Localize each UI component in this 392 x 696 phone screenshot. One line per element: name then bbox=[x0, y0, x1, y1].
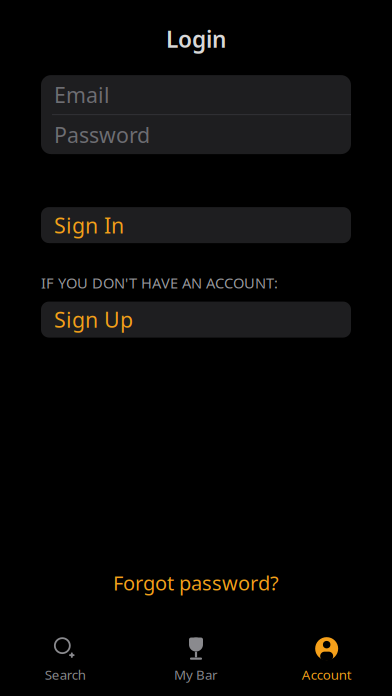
button[interactable]: Search bbox=[0, 632, 131, 688]
staticText: My Bar bbox=[174, 666, 218, 683]
staticText: Email bbox=[54, 80, 110, 109]
staticText: Sign Up bbox=[54, 305, 133, 334]
button[interactable]: Sign Up bbox=[41, 302, 351, 338]
button[interactable]: Forgot password? bbox=[89, 561, 303, 604]
staticText: Sign In bbox=[54, 211, 124, 239]
staticText: Forgot password? bbox=[113, 569, 279, 596]
staticText: Search bbox=[45, 666, 86, 683]
staticText: Account bbox=[302, 666, 352, 683]
button[interactable]: Account bbox=[261, 632, 392, 688]
staticText: Password bbox=[54, 120, 150, 149]
staticText: IF YOU DON'T HAVE AN ACCOUNT: bbox=[41, 273, 278, 293]
button[interactable]: My Bar bbox=[131, 632, 261, 688]
button[interactable]: Sign In bbox=[41, 207, 351, 243]
staticText: Login bbox=[166, 24, 226, 54]
